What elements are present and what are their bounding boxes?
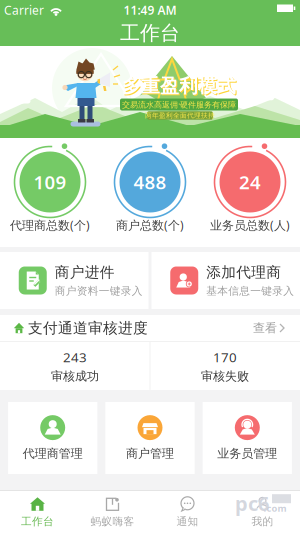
staticText: 添加代理商: [206, 263, 281, 281]
staticText: 代理商管理: [23, 446, 83, 461]
staticText: 业务员总数(人): [210, 217, 290, 233]
button[interactable]: 工作台: [0, 491, 75, 533]
staticText: 243: [63, 348, 87, 366]
staticText: 业务员管理: [217, 446, 277, 461]
button[interactable]: 蚂蚁嗨客: [75, 491, 150, 533]
staticText: 商户管理: [126, 446, 174, 461]
staticText: 488: [133, 170, 166, 194]
button[interactable]: 查看: [253, 321, 286, 335]
button[interactable]: 商户管理: [105, 402, 195, 474]
staticText: 两年盈利全面代理扶持: [145, 111, 215, 120]
staticText: 审核成功: [51, 369, 99, 383]
staticText: .com: [263, 502, 286, 514]
button[interactable]: 添加代理商: [151, 252, 300, 309]
staticText: 我的: [251, 515, 273, 528]
button[interactable]: 代理商管理: [8, 402, 97, 474]
staticText: 基本信息一键录入: [206, 284, 294, 298]
staticText: 109: [33, 170, 66, 194]
staticText: 多重盈利模式: [123, 75, 237, 98]
staticText: 多重盈利模式: [122, 74, 236, 97]
staticText: 商户进件: [55, 263, 115, 281]
staticText: Carrier: [4, 2, 44, 18]
staticText: 代理商总数(个): [10, 217, 90, 233]
staticText: 24: [239, 170, 261, 194]
button[interactable]: 通知: [150, 491, 225, 533]
staticText: 蚂蚁嗨客: [90, 515, 134, 528]
staticText: 查看: [253, 321, 277, 335]
staticText: 工作台: [120, 21, 180, 45]
staticText: 170: [213, 348, 237, 366]
staticText: 11:49 AM: [123, 2, 176, 18]
button[interactable]: 170: [150, 342, 300, 390]
staticText: 商户总数(个): [116, 217, 184, 233]
staticText: pc6: [235, 490, 269, 516]
button[interactable]: 243: [0, 342, 150, 390]
staticText: 交易流水高返佣·硬件服务有保障: [122, 99, 236, 110]
button[interactable]: 业务员管理: [203, 402, 292, 474]
staticText: 工作台: [21, 515, 54, 528]
staticText: 支付通道审核进度: [28, 319, 148, 337]
staticText: 商户资料一键录入: [55, 284, 143, 298]
button[interactable]: 我的: [225, 491, 300, 533]
button[interactable]: 商户进件: [0, 252, 148, 309]
staticText: 审核失败: [201, 369, 249, 383]
staticText: 通知: [176, 515, 198, 528]
